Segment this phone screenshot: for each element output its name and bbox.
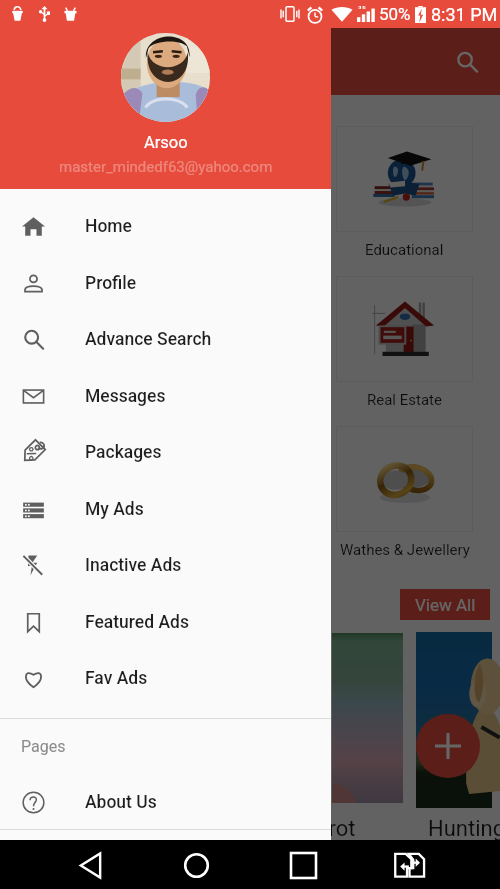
staticText: Real Estate — [367, 391, 442, 409]
button[interactable]: Profile — [0, 255, 331, 311]
staticText: 50% — [379, 4, 411, 24]
button[interactable]: Add — [416, 714, 480, 778]
staticText: Hunting — [428, 816, 500, 842]
button[interactable]: Switch apps — [387, 843, 431, 887]
staticText: rrot — [321, 816, 356, 842]
staticText: Wathes & Jewellery — [340, 541, 470, 559]
staticText: master_mindedf63@yahoo.com — [59, 158, 273, 176]
button[interactable] — [336, 126, 473, 232]
button[interactable]: Profile photo — [121, 33, 210, 122]
button[interactable]: Packages — [0, 424, 331, 480]
staticText: Featured Ads — [85, 612, 189, 633]
staticText: About Us — [85, 792, 157, 813]
button[interactable]: Inactive Ads — [0, 537, 331, 593]
button[interactable]: About Us — [0, 774, 331, 830]
button[interactable]: Messages — [0, 368, 331, 424]
button[interactable]: My Ads — [0, 481, 331, 537]
staticText: Pages — [21, 737, 66, 756]
button[interactable]: Search — [448, 43, 486, 81]
button[interactable] — [336, 276, 473, 382]
button[interactable]: Home — [0, 198, 331, 254]
staticText: Fav Ads — [85, 668, 148, 689]
staticText: Advance Search — [85, 329, 212, 350]
button[interactable]: Home — [174, 843, 218, 887]
staticText: Messages — [85, 386, 166, 407]
staticText: Packages — [85, 442, 162, 463]
staticText: Inactive Ads — [85, 555, 182, 576]
staticText: View All — [415, 595, 476, 615]
button[interactable]: Pages — [0, 719, 331, 774]
button[interactable]: Featured Ads — [0, 594, 331, 650]
staticText: Educational — [365, 241, 444, 259]
staticText: 8:31 PM — [431, 4, 498, 25]
button[interactable]: Fav Ads — [0, 650, 331, 706]
button[interactable]: View All — [400, 589, 490, 620]
button[interactable] — [336, 426, 473, 532]
staticText: My Ads — [85, 499, 144, 520]
button[interactable]: Back — [68, 843, 112, 887]
staticText: Arsoo — [144, 133, 188, 152]
button[interactable]: Recents — [281, 843, 325, 887]
staticText: Home — [85, 216, 132, 237]
staticText: Profile — [85, 273, 137, 294]
button[interactable]: Advance Search — [0, 311, 331, 367]
